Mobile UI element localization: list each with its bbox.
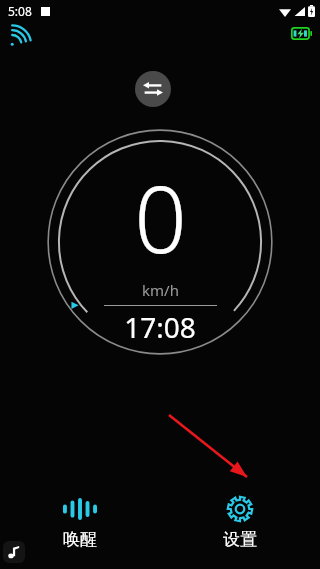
- staticText: 设置: [223, 529, 257, 550]
- staticText: 0: [134, 155, 187, 280]
- staticText: 17:08: [124, 308, 196, 346]
- staticText: 5:08: [8, 3, 32, 19]
- button[interactable]: Wake: [40, 491, 120, 554]
- other: Signal: [9, 27, 29, 47]
- button[interactable]: Settings: [200, 491, 280, 554]
- staticText: 唤醒: [63, 529, 97, 550]
- button[interactable]: Music: [3, 541, 25, 563]
- staticText: km/h: [142, 280, 179, 300]
- button[interactable]: Swap units: [135, 71, 171, 107]
- other: Charging: [291, 27, 312, 40]
